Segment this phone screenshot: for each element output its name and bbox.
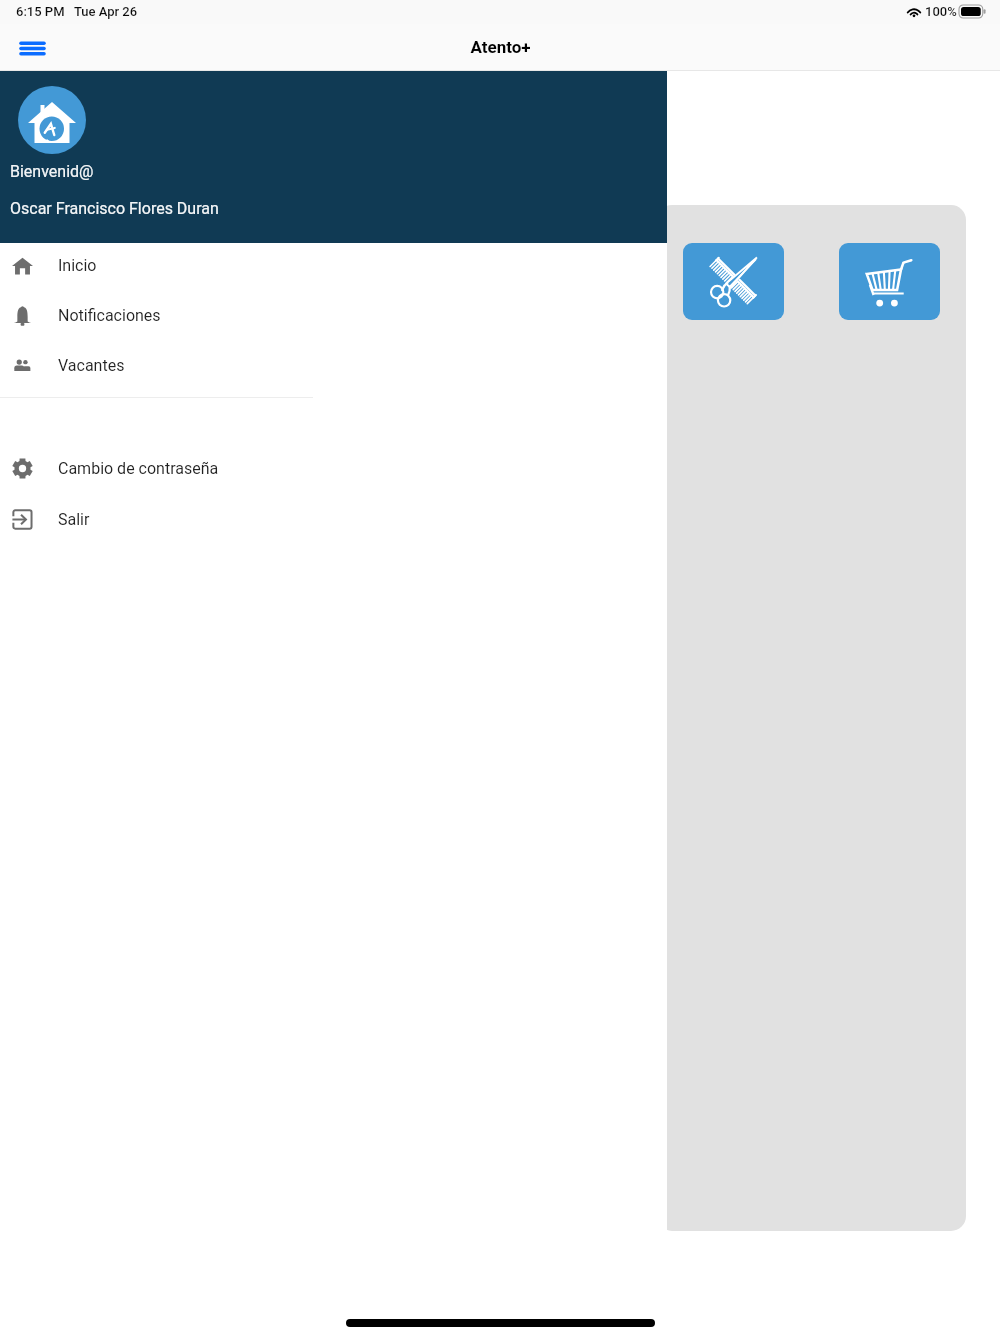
- staticText: Notificaciones: [58, 306, 161, 325]
- staticText: Atento+: [470, 37, 531, 57]
- button[interactable]: Cambio de contraseña: [0, 446, 667, 490]
- button[interactable]: Inicio: [0, 243, 667, 287]
- staticText: 100%: [925, 4, 957, 19]
- button[interactable]: Salir: [0, 497, 667, 541]
- staticText: Bienvenid@: [10, 162, 94, 181]
- staticText: Salir: [58, 510, 90, 529]
- staticText: Oscar Francisco Flores Duran: [10, 199, 219, 218]
- button[interactable]: Notificaciones: [0, 293, 667, 337]
- button[interactable]: Peluquería: [683, 243, 784, 320]
- button[interactable]: Vacantes: [0, 343, 667, 387]
- button[interactable]: Compras: [839, 243, 940, 320]
- staticText: Vacantes: [58, 356, 125, 375]
- button[interactable]: Menu: [10, 26, 54, 70]
- staticText: 6:15 PM Tue Apr 26: [16, 4, 138, 19]
- staticText: Cambio de contraseña: [58, 459, 219, 478]
- staticText: Inicio: [58, 256, 97, 275]
